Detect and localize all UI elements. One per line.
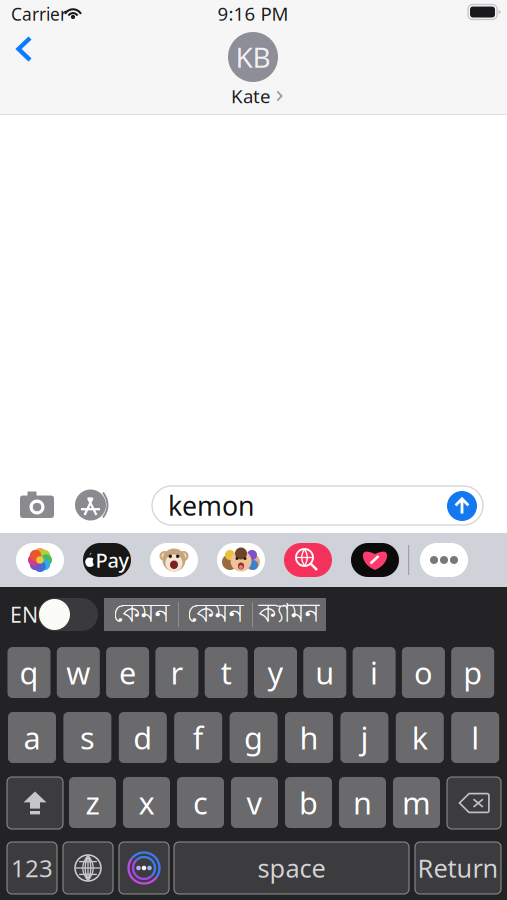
- staticText: a: [23, 717, 40, 758]
- staticText: k: [412, 717, 428, 758]
- staticText: Return: [417, 851, 498, 885]
- staticText: y: [267, 652, 283, 693]
- button[interactable]: n: [339, 777, 386, 828]
- button[interactable]: z: [69, 777, 116, 828]
- button[interactable]: s: [63, 712, 111, 763]
- staticText: r: [170, 652, 183, 693]
- button[interactable]: Photos: [16, 543, 64, 577]
- button[interactable]: কেমন: [178, 598, 252, 631]
- button[interactable]: 123: [7, 842, 57, 894]
- staticText: কেমন: [112, 597, 169, 632]
- staticText: p: [463, 652, 482, 693]
- staticText: o: [414, 652, 433, 693]
- staticText: j: [360, 717, 368, 758]
- staticText: ক্যামন: [258, 597, 319, 632]
- button[interactable]: Dictation: [119, 842, 169, 894]
- button[interactable]: h: [285, 712, 333, 763]
- staticText: KB: [235, 38, 270, 76]
- staticText: c: [193, 782, 208, 823]
- staticText: b: [299, 782, 318, 823]
- button[interactable]: #images: [284, 543, 332, 577]
- staticText: space: [257, 851, 325, 885]
- button[interactable]: c: [177, 777, 224, 828]
- button[interactable]: Fitness: [351, 543, 399, 577]
- staticText: x: [138, 782, 154, 823]
- button[interactable]: Switch keyboard language: [38, 598, 98, 631]
- button[interactable]: r: [155, 647, 198, 698]
- button[interactable]: v: [231, 777, 278, 828]
- staticText: v: [246, 782, 262, 823]
- button[interactable]: j: [340, 712, 388, 763]
- button[interactable]: Delete: [447, 777, 501, 829]
- button[interactable]: q: [7, 647, 50, 698]
- staticText: f: [193, 717, 204, 758]
- button[interactable]: l: [451, 712, 499, 763]
- button[interactable]: Apple Pay: [83, 543, 131, 577]
- staticText: m: [402, 782, 431, 823]
- button[interactable]: Animoji: [150, 543, 198, 577]
- button[interactable]: x: [123, 777, 170, 828]
- button[interactable]: o: [402, 647, 445, 698]
- staticText: EN: [10, 600, 38, 629]
- button[interactable]: d: [119, 712, 167, 763]
- staticText: Kate: [231, 84, 271, 108]
- button[interactable]: More apps: [420, 543, 468, 577]
- button[interactable]: কেমন: [104, 598, 178, 631]
- staticText: কেমন: [186, 597, 243, 632]
- button[interactable]: Next keyboard: [63, 842, 113, 894]
- staticText: 123: [11, 852, 53, 884]
- button[interactable]: Send: [447, 491, 477, 521]
- button[interactable]: Return: [415, 842, 501, 894]
- staticText: Pay: [95, 547, 129, 573]
- button[interactable]: u: [303, 647, 346, 698]
- staticText: u: [315, 652, 334, 693]
- button[interactable]: g: [230, 712, 278, 763]
- button[interactable]: b: [285, 777, 332, 828]
- staticText: kemon: [168, 488, 254, 523]
- staticText: d: [133, 717, 152, 758]
- staticText: z: [85, 782, 99, 823]
- button[interactable]: a: [8, 712, 56, 763]
- button[interactable]: Kate, contact details: [203, 32, 307, 104]
- button[interactable]: App Store: [71, 483, 119, 527]
- button[interactable]: ক্যামন: [252, 598, 326, 631]
- staticText: i: [370, 652, 378, 693]
- button[interactable]: Camera: [13, 483, 61, 527]
- button[interactable]: Shift: [7, 777, 63, 829]
- button[interactable]: m: [393, 777, 440, 828]
- button[interactable]: e: [106, 647, 149, 698]
- button[interactable]: Memoji: [217, 543, 265, 577]
- staticText: t: [221, 652, 232, 693]
- button[interactable]: t: [205, 647, 248, 698]
- staticText: q: [19, 652, 38, 693]
- staticText: g: [244, 717, 263, 758]
- staticText: h: [299, 717, 318, 758]
- button[interactable]: f: [174, 712, 222, 763]
- button[interactable]: k: [396, 712, 444, 763]
- staticText: 9:16 PM: [217, 1, 288, 26]
- staticText: n: [353, 782, 372, 823]
- button[interactable]: p: [451, 647, 494, 698]
- staticText: w: [66, 652, 90, 693]
- button[interactable]: w: [57, 647, 100, 698]
- button[interactable]: space: [174, 842, 409, 894]
- staticText: e: [119, 652, 136, 693]
- button[interactable]: Back: [1, 26, 47, 72]
- button[interactable]: i: [353, 647, 396, 698]
- button[interactable]: y: [254, 647, 297, 698]
- staticText: Carrier: [11, 2, 67, 25]
- staticText: l: [471, 717, 479, 758]
- staticText: s: [80, 717, 95, 758]
